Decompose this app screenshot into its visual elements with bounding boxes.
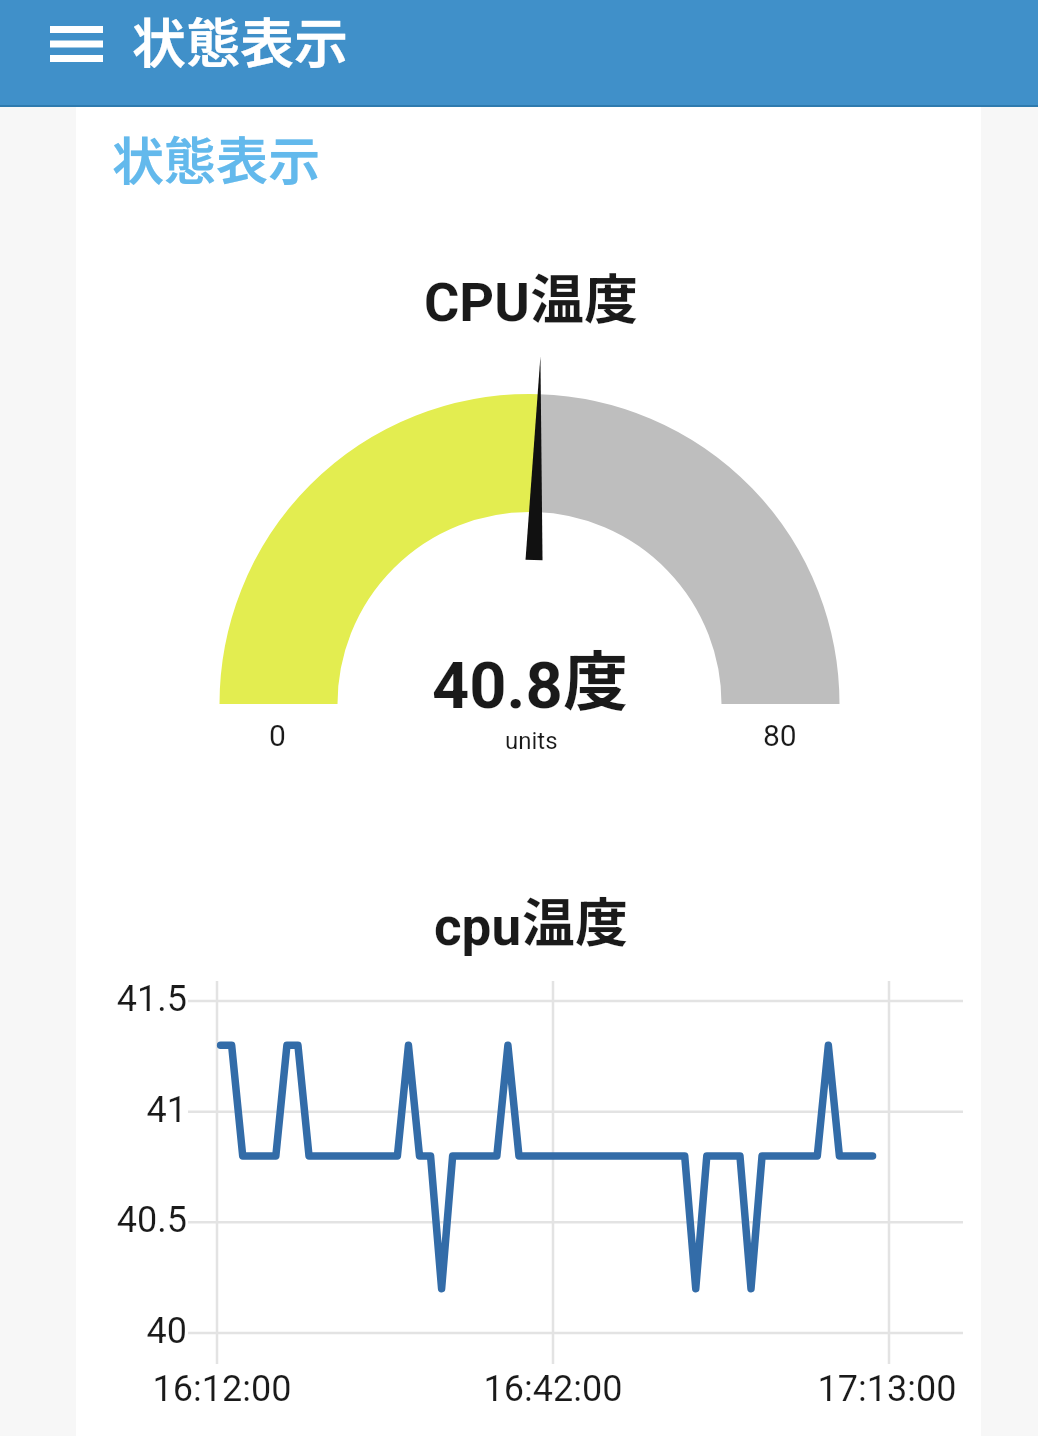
- staticText: 状態表示: [132, 0, 348, 78]
- staticText: 度: [563, 630, 629, 724]
- staticText: 41.5: [62, 978, 187, 1020]
- staticText: 40: [62, 1310, 187, 1352]
- staticText: 温度: [522, 881, 628, 958]
- staticText: 0: [269, 718, 286, 753]
- staticText: 80: [763, 718, 797, 753]
- staticText: 40.5: [62, 1199, 187, 1241]
- staticText: 16:12:00: [147, 1368, 297, 1410]
- staticText: 41: [62, 1089, 187, 1131]
- staticText: 状態表示: [112, 120, 321, 195]
- staticText: units: [505, 727, 558, 755]
- staticText: 40.8: [432, 648, 563, 724]
- staticText: CPU: [424, 271, 530, 334]
- staticText: 16:42:00: [478, 1368, 628, 1410]
- button[interactable]: Open navigation menu: [30, 12, 122, 94]
- staticText: 温度: [530, 256, 638, 334]
- staticText: 17:13:00: [812, 1368, 962, 1410]
- staticText: cpu: [434, 896, 522, 958]
